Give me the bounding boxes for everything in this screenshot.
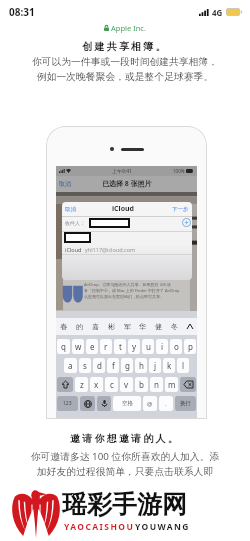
button[interactable]: 冬 [171,322,178,331]
button[interactable]: More candidates [187,324,193,329]
staticText: 空格 [122,400,133,407]
button[interactable]: b [135,377,148,392]
button[interactable]: o [170,339,182,354]
button[interactable]: Dictation [97,396,111,411]
staticText: k [167,360,172,371]
staticText: 瑶彩手游网 [62,489,187,520]
button[interactable]: f [107,358,119,373]
button[interactable]: 嘉 [92,322,99,331]
staticText: YAOCAISHOU [64,521,135,533]
button[interactable]: Backspace [180,377,196,392]
staticText: v [124,379,129,390]
staticText: l [182,360,185,371]
staticText: 华 [139,322,146,331]
button[interactable]: 春 [60,322,67,331]
staticText: o [174,341,179,352]
button[interactable]: j [149,358,161,373]
staticText: 军 [124,322,131,331]
button[interactable]: y [128,339,140,354]
staticText: a [68,360,73,371]
staticText: t [119,341,122,352]
button[interactable]: 华 [139,322,146,331]
button[interactable]: q [57,339,70,354]
staticText: 08:31 [9,5,35,19]
staticText: w [75,341,82,352]
staticText: 备「控制中心」或 Mac 上的 Finder 中打开了 AirDrop [84,288,180,293]
button[interactable]: Add contact [182,218,191,227]
button[interactable]: Numbers [57,396,78,411]
button[interactable]: 健 [155,322,162,331]
button[interactable]: 的 [76,322,83,331]
button[interactable]: . [159,396,173,411]
button[interactable]: Shift [57,377,73,392]
staticText: 嘉 [92,322,99,331]
staticText: @ [147,400,153,408]
button[interactable]: s [79,358,91,373]
staticText: m [168,379,176,390]
staticText: 下一步 [172,206,189,213]
staticText: 上午9:41 [112,168,132,175]
staticText: s [83,360,87,371]
button[interactable]: l [177,358,189,373]
staticText: 么您将可以显出在置对他们，轻点即可共享。 [84,294,164,299]
button[interactable]: 取消 [65,206,76,213]
staticText: r [104,341,108,352]
staticText: 健 [155,322,162,331]
button[interactable]: 取消 [59,180,71,188]
staticText: 彬 [108,322,115,331]
button[interactable]: v [120,377,133,392]
staticText: Apple Inc. [111,23,146,33]
button[interactable]: u [142,339,154,354]
button[interactable]: 空格 [113,396,141,411]
button[interactable]: 军 [124,322,131,331]
button[interactable]: Switch keyboard [80,396,95,411]
staticText: b [139,379,144,390]
staticText: 100% [173,168,185,174]
staticText: i [161,341,164,352]
staticText: 的 [76,322,83,331]
button[interactable]: r [100,339,112,354]
button[interactable]: a [64,358,77,373]
staticText: 取消 [65,206,76,213]
button[interactable]: h [135,358,147,373]
button[interactable]: 彬 [108,322,115,331]
button[interactable]: t [114,339,126,354]
staticText: 取消 [59,180,71,188]
button[interactable]: n [150,377,163,392]
staticText: iCloud [65,246,82,253]
staticText: h [139,360,144,371]
button[interactable]: i [156,339,168,354]
button[interactable]: 换行 [175,396,196,411]
staticText: x [94,379,99,390]
button[interactable]: k [163,358,175,373]
staticText: 春 [60,322,67,331]
button[interactable]: w [72,339,84,354]
staticText: p [188,341,193,352]
staticText: iCloud [112,204,135,214]
button[interactable]: p [184,339,196,354]
staticText: j [154,360,157,371]
button[interactable]: g [121,358,133,373]
staticText: AirDrop。立即与附近的人共享。如果想在 iOS 设 [84,282,172,287]
staticText: 换行 [180,400,191,407]
staticText: g [125,360,130,371]
staticText: 123 [63,400,72,407]
staticText: 你可以为一件事或一段时间创建共享相簿， 例如一次晚餐聚会，或是整个足球赛季。 [0,56,250,83]
button[interactable]: x [90,377,103,392]
staticText: e [90,341,95,352]
button[interactable]: e [86,339,98,354]
staticText: 冬 [171,322,178,331]
button[interactable]: 下一步 [172,206,189,213]
button[interactable]: Address bar apple.com [0,22,250,34]
staticText: 创建共享相簿。 [0,40,250,53]
staticText: f [112,360,115,371]
button[interactable]: m [165,377,178,392]
staticText: y [132,341,137,352]
staticText: 4G [212,7,223,18]
staticText: 你可邀请多达 100 位你所喜欢的人加入。添 加好友的过程很简单，只要点击联系人… [0,450,250,478]
button[interactable]: d [93,358,105,373]
staticText: 收件人： [65,220,85,226]
button[interactable]: z [75,377,88,392]
button[interactable]: c [105,377,118,392]
button[interactable]: @ [143,396,157,411]
